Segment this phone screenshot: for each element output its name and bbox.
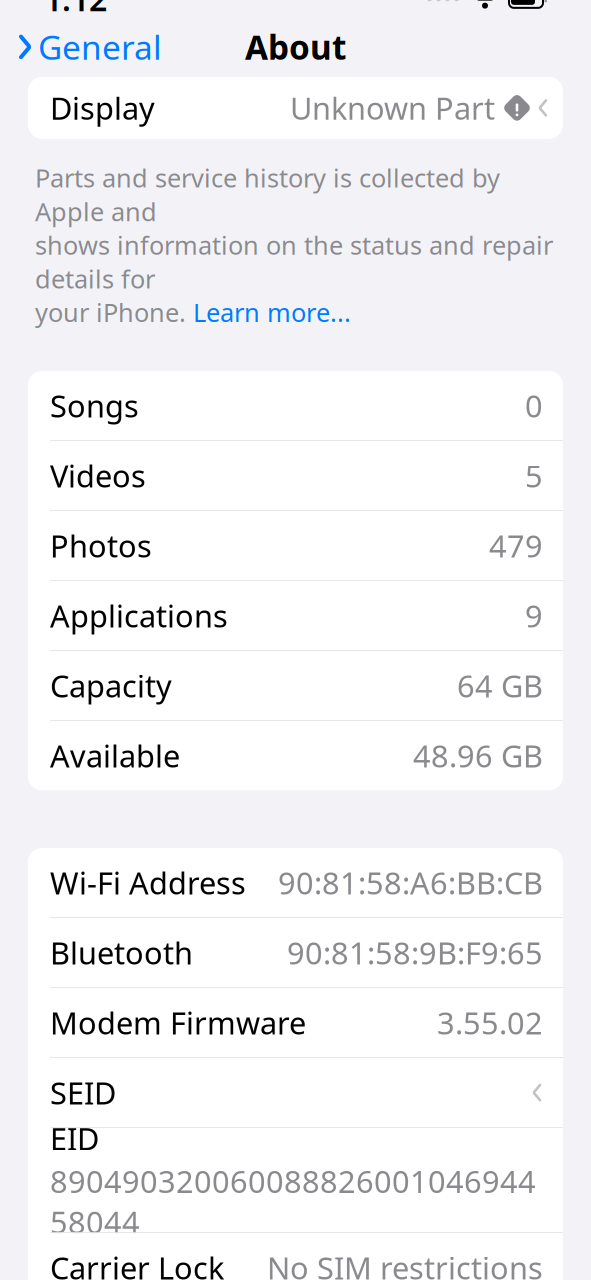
staticText: your iPhone. xyxy=(35,295,193,329)
staticText: 0 xyxy=(525,385,543,426)
staticText: No SIM restrictions xyxy=(267,1247,543,1280)
button[interactable]: Songs xyxy=(28,371,563,440)
staticText: 1:12 xyxy=(44,0,107,20)
button[interactable]: EID xyxy=(28,1128,563,1232)
button[interactable]: Applications xyxy=(28,581,563,650)
button[interactable]: Carrier Lock xyxy=(28,1233,563,1280)
staticText: Carrier Lock xyxy=(50,1247,224,1280)
staticText: Learn more... xyxy=(193,295,351,329)
staticText: Available xyxy=(50,735,180,776)
staticText: Parts and service history is collected b… xyxy=(35,161,500,228)
button[interactable]: Videos xyxy=(28,441,563,510)
staticText: 5 xyxy=(525,455,543,496)
staticText: About xyxy=(245,25,346,69)
staticText: Capacity xyxy=(50,665,172,706)
button[interactable]: Capacity xyxy=(28,651,563,720)
staticText: 64 GB xyxy=(457,665,543,706)
staticText: Wi-Fi Address xyxy=(50,862,246,903)
button[interactable]: Display xyxy=(28,77,563,139)
staticText: SEID xyxy=(50,1072,116,1113)
button[interactable]: Bluetooth xyxy=(28,918,563,987)
button[interactable]: SEID xyxy=(28,1058,563,1127)
staticText: 89049032006008882600104694458044 xyxy=(50,1161,536,1242)
staticText: 9 xyxy=(525,595,543,636)
staticText: Videos xyxy=(50,455,146,496)
staticText: General xyxy=(38,25,162,69)
staticText: Modem Firmware xyxy=(50,1002,306,1043)
button[interactable]: Wi-Fi Address xyxy=(28,848,563,917)
staticText: Photos xyxy=(50,525,152,566)
button[interactable]: Modem Firmware xyxy=(28,988,563,1057)
staticText: 479 xyxy=(489,525,543,566)
staticText: 90:81:58:9B:F9:65 xyxy=(287,932,543,973)
staticText: Unknown Part xyxy=(290,87,495,128)
staticText: Display xyxy=(50,87,155,128)
staticText: shows information on the status and repa… xyxy=(35,228,553,295)
staticText: 90:81:58:A6:BB:CB xyxy=(278,862,543,903)
staticText: Bluetooth xyxy=(50,932,193,973)
button[interactable]: Available xyxy=(28,721,563,790)
staticText: 48.96 GB xyxy=(413,735,543,776)
button[interactable]: General xyxy=(0,19,162,75)
staticText: EID xyxy=(50,1118,99,1159)
button[interactable]: Learn more... xyxy=(193,295,351,329)
staticText: Songs xyxy=(50,385,139,426)
staticText: Applications xyxy=(50,595,228,636)
staticText: 3.55.02 xyxy=(437,1002,543,1043)
button[interactable]: Photos xyxy=(28,511,563,580)
